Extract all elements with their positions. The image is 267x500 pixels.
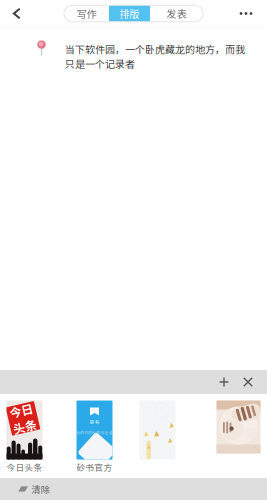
staticText: 发表	[166, 6, 186, 21]
staticText: 写作	[76, 6, 96, 21]
button[interactable]: Close panel	[236, 370, 260, 394]
button[interactable]: 写作	[64, 5, 109, 22]
button[interactable]: 排版	[109, 5, 150, 22]
button[interactable]: 清除	[18, 478, 49, 500]
button[interactable]: 今日	[0, 400, 54, 478]
button[interactable]: 发表	[150, 5, 203, 22]
staticText: 头条	[11, 418, 35, 435]
staticText: 排版	[119, 6, 139, 21]
button[interactable]	[208, 400, 267, 478]
button[interactable]: Back	[3, 0, 31, 26]
staticText: 砂书官方	[76, 461, 112, 473]
button[interactable]: More options	[231, 0, 261, 26]
button[interactable]: 简书	[64, 400, 124, 478]
staticText: 今日头条	[6, 461, 42, 473]
staticText: 创作你的创作与生活	[76, 429, 112, 435]
button[interactable]	[127, 400, 187, 478]
staticText: 今日	[11, 401, 35, 419]
staticText: 当下软件园，一个卧虎藏龙的地方，而我只是一个记录者	[65, 42, 245, 71]
staticText: 清除	[31, 482, 49, 495]
staticText: 简书	[89, 418, 99, 425]
button[interactable]: Add image	[212, 370, 236, 394]
